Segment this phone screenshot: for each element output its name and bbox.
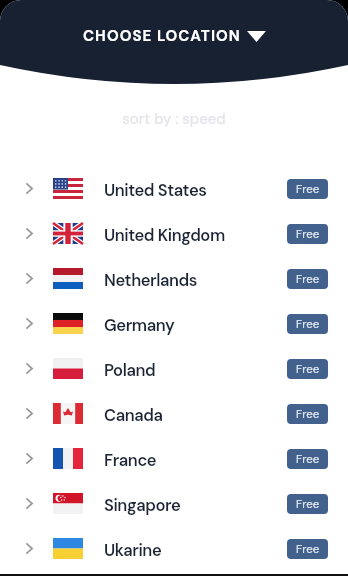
staticText: sort by : speed [0,109,348,129]
other: Expand Poland [26,363,33,374]
staticText: Netherlands [104,270,197,291]
staticText: United States [104,180,207,201]
button[interactable]: Expand Canada [0,391,348,436]
staticText: Free [296,182,320,197]
button[interactable]: Expand United Kingdom [0,211,348,256]
other: Expand Singapore [26,498,33,509]
other: Expand United Kingdom [26,228,33,239]
staticText: Free [296,317,320,332]
button[interactable]: Expand France [0,436,348,481]
staticText: Free [296,452,320,467]
button[interactable]: Free [287,269,328,289]
button[interactable]: Expand Germany [0,301,348,346]
other: Expand United States [26,183,33,194]
button[interactable]: Free [287,224,328,244]
button[interactable]: Free [287,179,328,199]
button[interactable]: Free [287,359,328,379]
button[interactable]: CHOOSE LOCATION [83,26,266,46]
button[interactable]: Expand Singapore [0,481,348,526]
staticText: United Kingdom [104,225,225,246]
button[interactable]: Expand Netherlands [0,256,348,301]
staticText: Free [296,362,320,377]
staticText: Free [296,272,320,287]
staticText: Singapore [104,495,181,516]
staticText: Canada [104,405,163,426]
button[interactable]: Free [287,404,328,424]
button[interactable]: Free [287,314,328,334]
other: Expand Germany [26,318,33,329]
staticText: France [104,450,157,471]
other: Expand Ukarine [26,543,33,554]
other: Expand Netherlands [26,273,33,284]
staticText: Free [296,407,320,422]
staticText: Free [296,542,320,557]
button[interactable]: Expand United States [0,166,348,211]
staticText: Free [296,227,320,242]
button[interactable]: Free [287,449,328,469]
button[interactable]: Free [287,539,328,559]
staticText: CHOOSE LOCATION [83,26,241,46]
other: Expand France [26,453,33,464]
button[interactable]: Free [287,494,328,514]
staticText: Ukarine [104,540,162,561]
staticText: Poland [104,360,156,381]
button[interactable]: Expand Poland [0,346,348,391]
other: Expand Canada [26,408,33,419]
staticText: Free [296,497,320,512]
staticText: Germany [104,315,175,336]
button[interactable]: Expand Ukarine [0,526,348,571]
